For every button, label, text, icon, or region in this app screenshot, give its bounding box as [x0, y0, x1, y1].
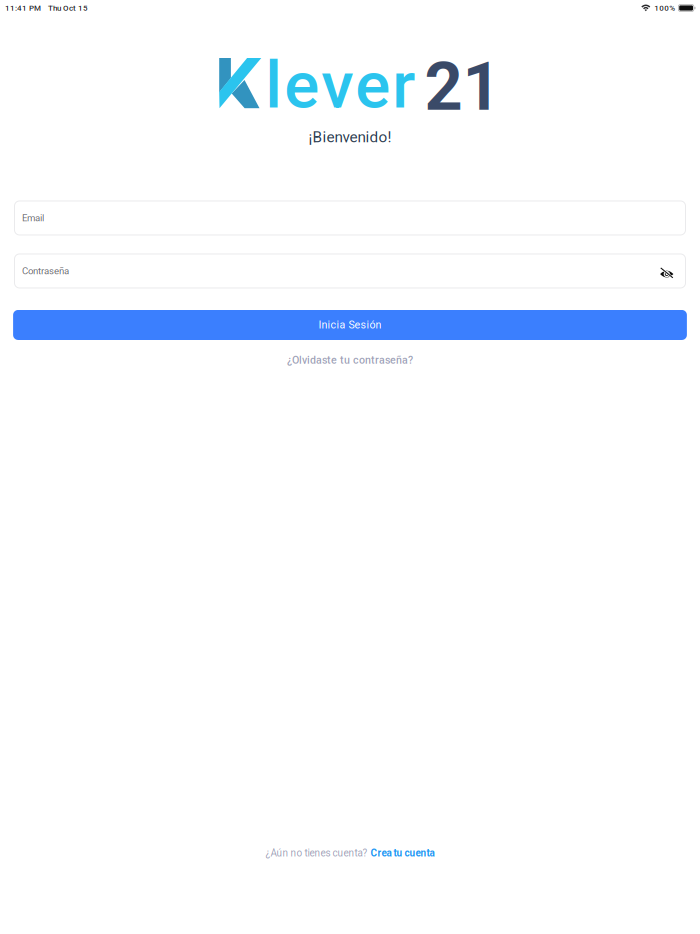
staticText: Email: [22, 212, 44, 224]
staticText: 100%: [654, 3, 675, 13]
staticText: 11:41 PM: [5, 3, 41, 13]
button[interactable]: Inicia Sesión: [13, 310, 687, 340]
staticText: lever: [265, 47, 415, 124]
button[interactable]: Show password: [653, 261, 674, 281]
staticText: ¿Aún no tienes cuenta?: [265, 847, 367, 859]
staticText: Thu Oct 15: [48, 3, 88, 13]
button[interactable]: Crea tu cuenta: [370, 847, 434, 859]
staticText: Inicia Sesión: [318, 319, 381, 331]
button[interactable]: ¿Olvidaste tu contraseña?: [287, 354, 413, 366]
staticText: ¿Olvidaste tu contraseña?: [287, 354, 413, 366]
staticText: 21: [424, 48, 500, 126]
staticText: Contraseña: [22, 265, 69, 277]
staticText: ¡Bienvenido!: [308, 128, 391, 146]
staticText: Crea tu cuenta: [370, 847, 434, 859]
